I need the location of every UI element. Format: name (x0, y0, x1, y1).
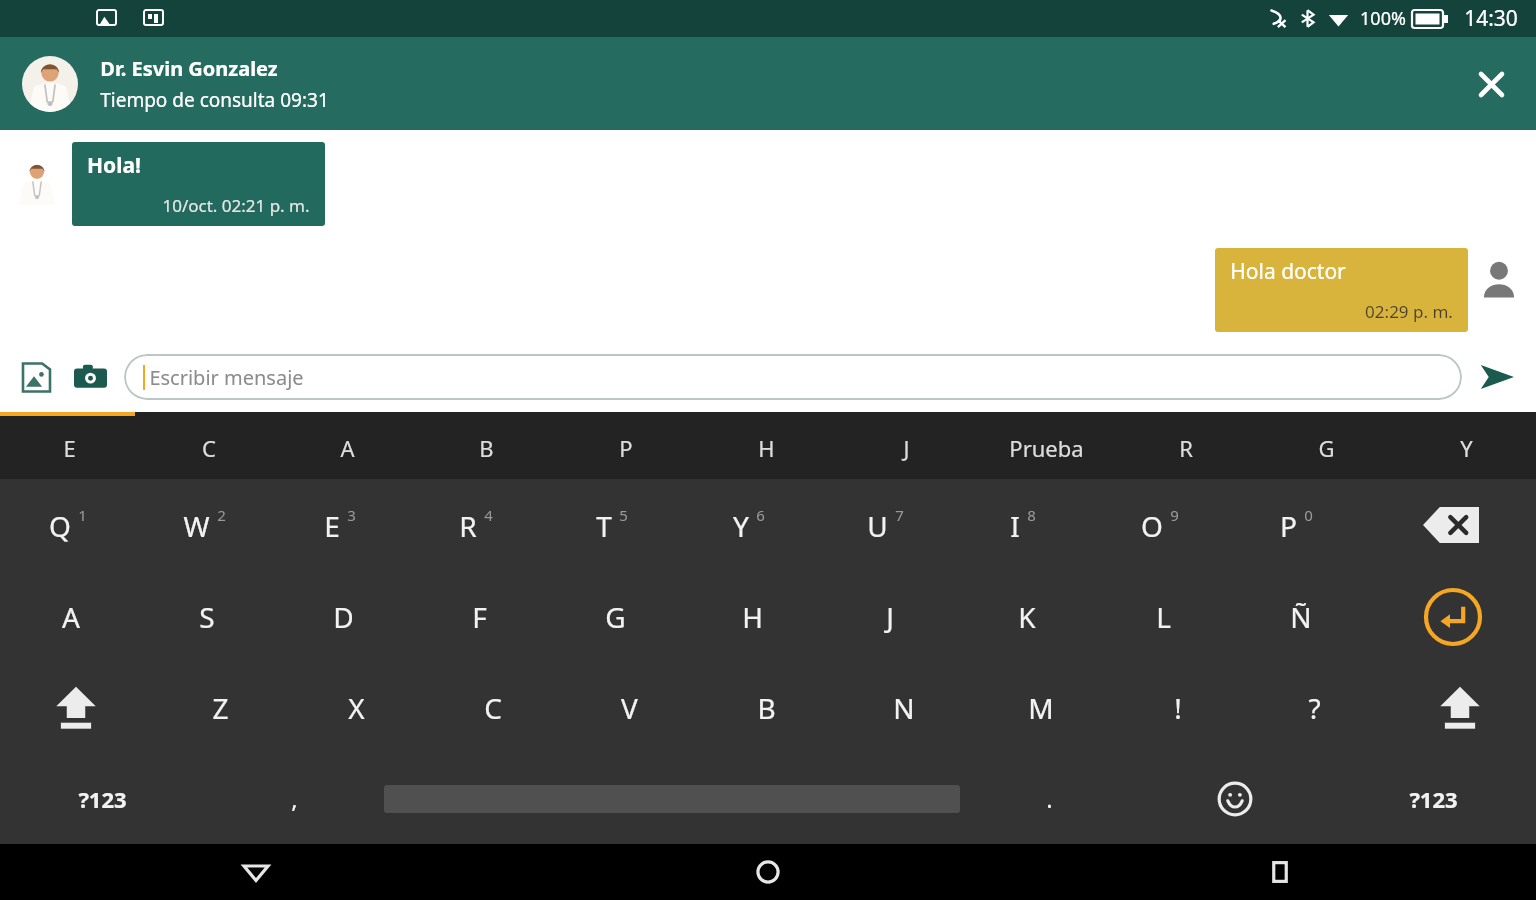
button[interactable]: C (139, 416, 278, 479)
button[interactable]: Borrar (1365, 479, 1536, 571)
staticText: Dr. Esvin Gonzalez (100, 55, 278, 82)
staticText: ?123 (1409, 784, 1458, 814)
button[interactable]: P (1228, 479, 1365, 571)
staticText: 02:29 p. m. (1365, 300, 1453, 323)
staticText: 9 (1170, 505, 1179, 525)
staticText: P (1280, 507, 1297, 545)
button[interactable]: Z (152, 662, 288, 753)
button[interactable]: T (544, 479, 680, 571)
staticText: U (867, 507, 888, 545)
button[interactable]: Espacio (384, 753, 960, 844)
staticText: Y (733, 507, 749, 545)
staticText: K (1018, 598, 1036, 636)
button[interactable]: Tomar foto (64, 351, 116, 403)
button[interactable]: O (1091, 479, 1228, 571)
staticText: D (333, 598, 354, 636)
staticText: V (621, 689, 638, 727)
button[interactable]: ! (1109, 662, 1246, 753)
button[interactable]: R (408, 479, 544, 571)
button[interactable]: Prueba (976, 416, 1116, 479)
button[interactable]: Recientes (1024, 844, 1536, 900)
button[interactable]: N (835, 662, 972, 753)
button[interactable]: B (698, 662, 835, 753)
button[interactable]: K (958, 571, 1095, 662)
button[interactable]: , (205, 753, 384, 844)
button[interactable]: J (821, 571, 958, 662)
button[interactable]: Y (680, 479, 817, 571)
staticText: 6 (756, 505, 765, 525)
staticText: 0 (1304, 505, 1313, 525)
button[interactable]: G (547, 571, 684, 662)
staticText: Prueba (1009, 433, 1084, 463)
button[interactable]: Escribir mensaje (124, 354, 1462, 400)
button[interactable]: H (696, 416, 836, 479)
button[interactable]: W (136, 479, 272, 571)
button[interactable]: Emoji (1139, 753, 1331, 844)
button[interactable]: ?123 (1331, 753, 1536, 844)
button[interactable]: A (278, 416, 417, 479)
staticText: O (1141, 507, 1163, 545)
staticText: Escribir mensaje (149, 364, 304, 391)
staticText: W (183, 507, 210, 545)
staticText: 8 (1027, 505, 1036, 525)
staticText: B (479, 433, 494, 463)
button[interactable]: Y (1396, 416, 1536, 479)
staticText: 14:30 (1464, 4, 1518, 33)
staticText: ! (1174, 689, 1182, 727)
staticText: , (291, 782, 298, 815)
button[interactable]: E (272, 479, 408, 571)
staticText: L (1156, 598, 1171, 636)
button[interactable]: Adjuntar archivo (10, 351, 62, 403)
button[interactable]: H (684, 571, 821, 662)
button[interactable]: Q (0, 479, 136, 571)
button[interactable]: U (817, 479, 954, 571)
button[interactable]: S (139, 571, 275, 662)
button[interactable]: J (836, 416, 976, 479)
button[interactable]: Intro (1369, 571, 1536, 662)
button[interactable]: D (275, 571, 411, 662)
staticText: Q (49, 507, 71, 545)
staticText: Ñ (1290, 598, 1312, 636)
button[interactable]: A (3, 571, 139, 662)
button[interactable]: Enviar (1468, 348, 1526, 406)
staticText: H (742, 598, 763, 636)
button[interactable]: Mayusculas alternativas (1383, 662, 1536, 753)
button[interactable]: C (424, 662, 561, 753)
button[interactable]: Cerrar (1462, 55, 1520, 113)
staticText: ? (1308, 689, 1321, 727)
staticText: X (348, 689, 365, 727)
button[interactable]: G (1256, 416, 1396, 479)
button[interactable]: M (972, 662, 1109, 753)
button[interactable]: . (960, 753, 1139, 844)
staticText: A (62, 598, 80, 636)
button[interactable]: L (1095, 571, 1232, 662)
button[interactable]: R (1116, 416, 1256, 479)
button[interactable]: Ñ (1232, 571, 1369, 662)
staticText: S (199, 598, 215, 636)
button[interactable]: Hola! (72, 142, 325, 226)
button[interactable]: I (954, 479, 1091, 571)
button[interactable]: E (0, 416, 139, 479)
staticText: P (619, 433, 633, 463)
button[interactable]: F (411, 571, 547, 662)
button[interactable]: Atras (0, 844, 512, 900)
button[interactable]: ?123 (0, 753, 205, 844)
staticText: F (472, 598, 487, 636)
staticText: Tiempo de consulta 09:31 (100, 87, 329, 113)
staticText: C (202, 433, 216, 463)
button[interactable]: Inicio (512, 844, 1024, 900)
button[interactable]: B (417, 416, 556, 479)
staticText: H (758, 433, 775, 463)
staticText: J (903, 433, 910, 463)
button[interactable]: V (561, 662, 698, 753)
staticText: I (1010, 507, 1020, 545)
staticText: 10/oct. 02:21 p. m. (162, 194, 310, 217)
staticText: T (596, 507, 612, 545)
button[interactable]: ? (1246, 662, 1383, 753)
staticText: R (459, 507, 477, 545)
staticText: Hola doctor (1230, 257, 1346, 286)
button[interactable]: Hola doctor (1215, 248, 1468, 332)
button[interactable]: X (288, 662, 424, 753)
button[interactable]: Mayusculas (0, 662, 152, 753)
button[interactable]: P (556, 416, 696, 479)
